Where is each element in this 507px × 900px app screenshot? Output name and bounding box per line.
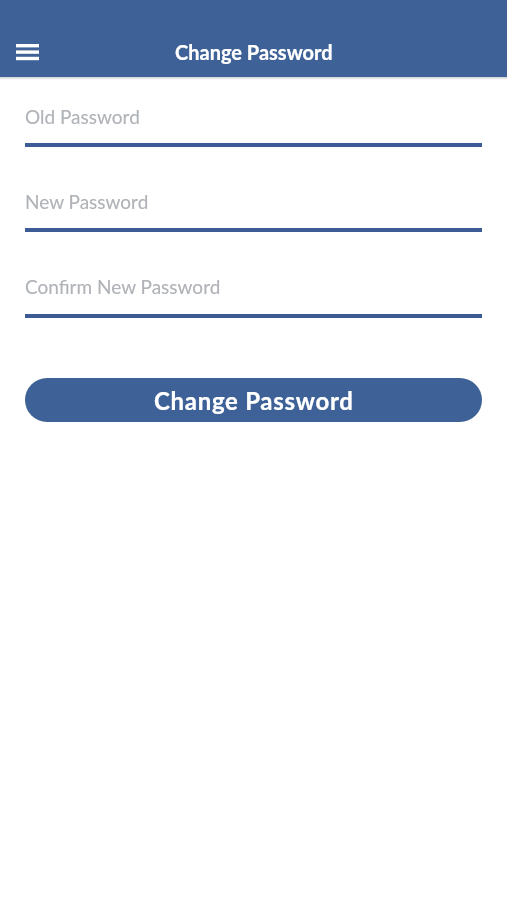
button[interactable]: [4, 28, 52, 76]
staticText: Change Password: [154, 386, 354, 415]
staticText: New Password: [25, 190, 149, 213]
staticText: Old Password: [25, 105, 140, 128]
button[interactable]: New Password: [25, 183, 482, 232]
staticText: Change Password: [175, 40, 333, 64]
staticText: Confirm New Password: [25, 275, 221, 298]
button[interactable]: Confirm New Password: [25, 268, 482, 318]
button[interactable]: Old Password: [25, 98, 482, 147]
button[interactable]: Change Password: [25, 378, 482, 422]
